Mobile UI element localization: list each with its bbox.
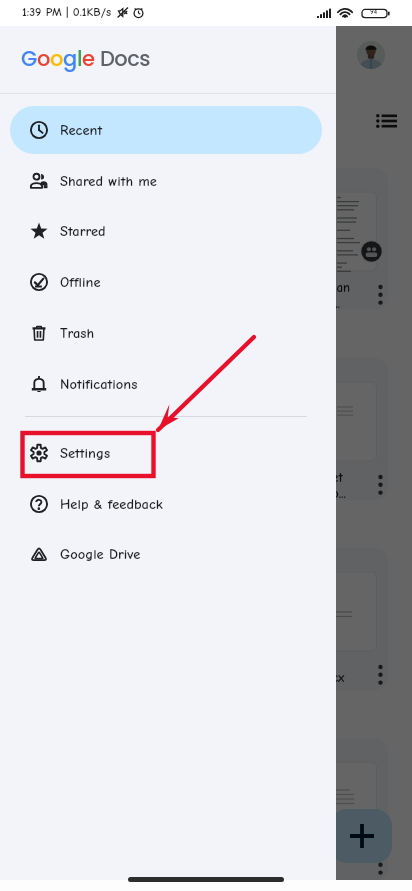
button[interactable]: Account <box>357 41 385 69</box>
button[interactable]: Starred <box>10 207 322 255</box>
button[interactable]: Notifications <box>10 360 322 408</box>
button[interactable]: Trash <box>10 309 322 357</box>
staticText: G <box>21 44 37 73</box>
staticText: Shared with me <box>60 173 157 190</box>
button[interactable]: Offline <box>10 258 322 306</box>
staticText: Settings <box>60 445 111 462</box>
staticText: o <box>50 44 63 73</box>
button[interactable]: Recent <box>10 106 322 154</box>
staticText: Recent <box>60 122 103 139</box>
staticText: 94 <box>370 8 377 16</box>
staticText: Notifications <box>60 376 138 393</box>
staticText: g <box>63 44 77 73</box>
staticText: Trash <box>60 325 95 342</box>
staticText: Docs <box>100 44 150 73</box>
button[interactable]: Help & feedback <box>10 480 322 528</box>
staticText: Starred <box>60 223 106 240</box>
staticText: cx <box>332 670 345 685</box>
button[interactable]: Settings <box>10 429 322 477</box>
button[interactable]: Google Drive <box>10 530 322 578</box>
staticText: Offline <box>60 274 101 291</box>
staticText: Google Drive <box>60 546 141 563</box>
staticText: e <box>82 44 95 73</box>
staticText: 1:39 PM | 0.1KB/s <box>22 5 112 19</box>
staticText: Help & feedback <box>60 496 163 513</box>
staticText: ean i... <box>330 280 351 311</box>
staticText: o <box>37 44 50 73</box>
staticText: l <box>77 44 82 73</box>
staticText: et o... <box>332 470 346 501</box>
button[interactable]: New document <box>330 809 392 863</box>
button[interactable]: Shared with me <box>10 157 322 205</box>
